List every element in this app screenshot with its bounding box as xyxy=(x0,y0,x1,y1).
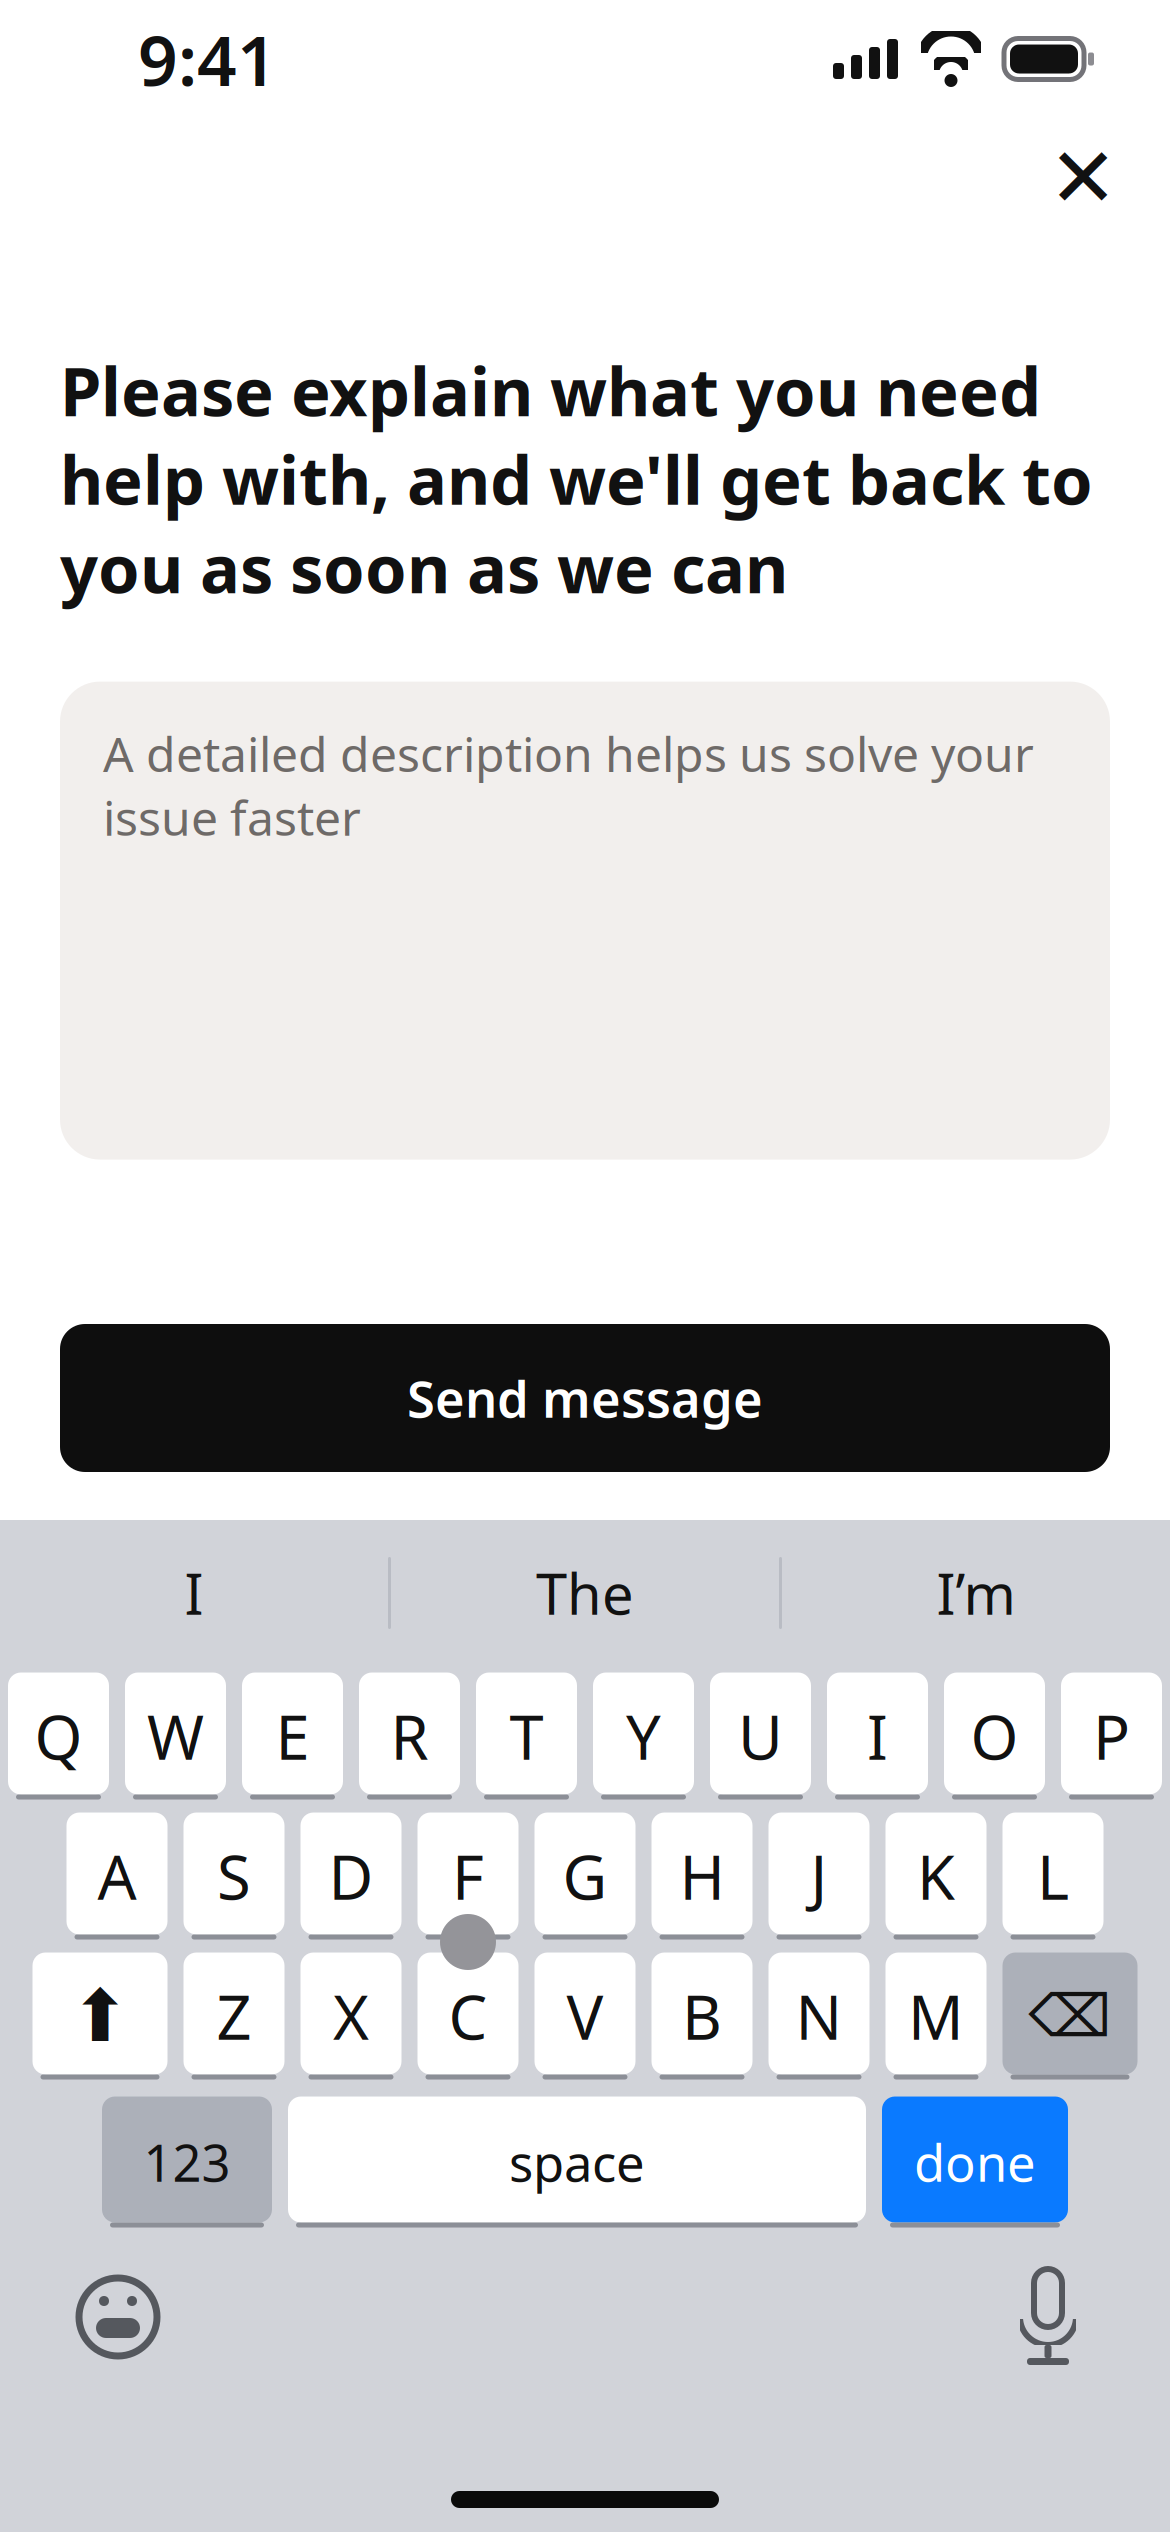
staticText: L xyxy=(1037,1835,1069,1917)
button[interactable]: H xyxy=(651,1811,752,1941)
staticText: T xyxy=(509,1695,543,1777)
staticText: S xyxy=(217,1835,251,1917)
staticText: Z xyxy=(216,1975,251,2057)
button[interactable]: 123 xyxy=(102,2095,272,2229)
button[interactable]: Send message xyxy=(60,1324,1110,1472)
staticText: 9:41 xyxy=(138,13,277,105)
button[interactable]: done xyxy=(882,2095,1068,2229)
staticText: R xyxy=(390,1695,428,1777)
button[interactable]: D xyxy=(300,1811,401,1941)
button[interactable]: Shift xyxy=(32,1951,167,2081)
staticText: 123 xyxy=(143,2128,230,2196)
staticText: W xyxy=(147,1695,204,1777)
button[interactable]: Z xyxy=(183,1951,284,2081)
button[interactable]: Delete xyxy=(1002,1951,1137,2081)
staticText: N xyxy=(795,1975,842,2057)
staticText: C xyxy=(448,1975,487,2057)
button[interactable]: Emoji keyboard xyxy=(58,2257,178,2377)
staticText: Send message xyxy=(407,1364,763,1432)
button[interactable]: A detailed description helps us solve yo… xyxy=(60,682,1110,1160)
button[interactable]: U xyxy=(710,1671,811,1801)
button[interactable]: T xyxy=(476,1671,577,1801)
button[interactable]: Dictate xyxy=(988,2257,1108,2377)
button[interactable]: Close xyxy=(1028,123,1138,233)
staticText: ⌫ xyxy=(1028,1983,1111,2049)
staticText: space xyxy=(509,2128,645,2196)
staticText: X xyxy=(333,1975,369,2057)
button[interactable]: J xyxy=(768,1811,869,1941)
staticText: A detailed description helps us solve yo… xyxy=(103,722,1034,849)
button[interactable]: Y xyxy=(593,1671,694,1801)
staticText: ⬆ xyxy=(70,1975,130,2057)
button[interactable]: C xyxy=(417,1951,518,2081)
staticText: E xyxy=(275,1695,309,1777)
button[interactable]: B xyxy=(651,1951,752,2081)
staticText: done xyxy=(914,2128,1036,2196)
button[interactable]: Q xyxy=(8,1671,109,1801)
staticText: M xyxy=(908,1975,964,2057)
button[interactable]: A xyxy=(66,1811,167,1941)
button[interactable]: S xyxy=(183,1811,284,1941)
staticText: The xyxy=(536,1556,634,1630)
button[interactable]: M xyxy=(885,1951,986,2081)
staticText: B xyxy=(682,1975,722,2057)
staticText: F xyxy=(452,1835,484,1917)
button[interactable]: I’m xyxy=(782,1520,1170,1666)
staticText: O xyxy=(970,1695,1018,1777)
staticText: A xyxy=(97,1835,136,1917)
staticText: U xyxy=(738,1695,783,1777)
button[interactable]: L xyxy=(1002,1811,1103,1941)
button[interactable]: V xyxy=(534,1951,635,2081)
button[interactable]: The xyxy=(391,1520,779,1666)
button[interactable]: G xyxy=(534,1811,635,1941)
staticText: Y xyxy=(626,1695,661,1777)
staticText: P xyxy=(1093,1695,1130,1777)
staticText: Please explain what you need help with, … xyxy=(60,346,1093,612)
button[interactable]: I xyxy=(827,1671,928,1801)
button[interactable]: space xyxy=(288,2095,866,2229)
staticText: J xyxy=(810,1835,827,1917)
staticText: ✕ xyxy=(1048,131,1117,225)
button[interactable]: N xyxy=(768,1951,869,2081)
staticText: I’m xyxy=(936,1556,1015,1630)
button[interactable]: P xyxy=(1061,1671,1162,1801)
staticText: D xyxy=(328,1835,373,1917)
button[interactable]: R xyxy=(359,1671,460,1801)
button[interactable]: W xyxy=(125,1671,226,1801)
staticText: H xyxy=(679,1835,724,1917)
button[interactable]: E xyxy=(242,1671,343,1801)
staticText: K xyxy=(917,1835,955,1917)
staticText: G xyxy=(562,1835,607,1917)
button[interactable]: I xyxy=(0,1520,388,1666)
staticText: I xyxy=(867,1695,888,1777)
button[interactable]: K xyxy=(885,1811,986,1941)
staticText: Q xyxy=(34,1695,82,1777)
button[interactable]: X xyxy=(300,1951,401,2081)
staticText: V xyxy=(566,1975,603,2057)
button[interactable]: O xyxy=(944,1671,1045,1801)
button[interactable]: F xyxy=(417,1811,518,1941)
staticText: I xyxy=(184,1556,203,1630)
